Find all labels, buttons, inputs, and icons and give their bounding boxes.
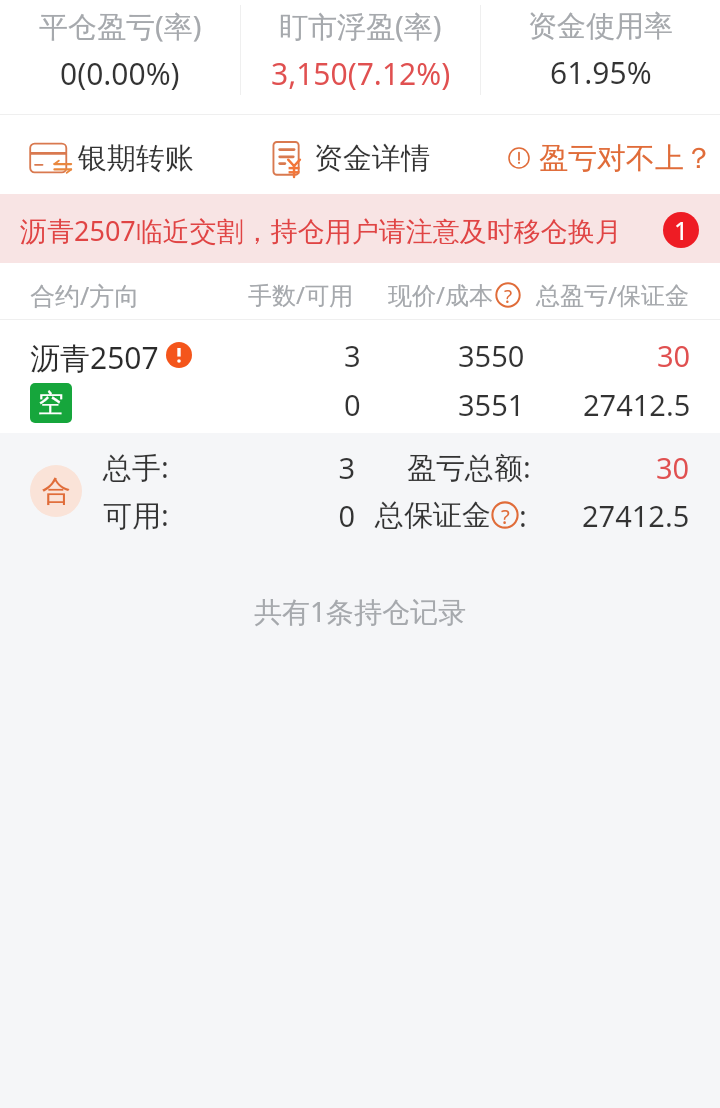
staticText: 共有1条持仓记录 [0,592,720,630]
staticText: 1 [674,213,689,247]
staticText: 27412.5 [582,496,690,535]
staticText: 资金详情 [314,140,430,177]
staticText: 现价/成本 [388,278,493,311]
button[interactable]: 资金详情 [268,122,508,194]
staticText: 3551 [458,385,525,424]
button[interactable]: 盯市浮盈(率) [241,0,480,100]
staticText: 合约/方向 [30,278,140,312]
button[interactable]: 沥青2507 [0,320,720,433]
staticText: 空 [38,387,64,420]
staticText: 0 [303,496,355,535]
staticText: 3,150(7.12%) [271,53,451,94]
staticText: 平仓盈亏(率) [39,6,202,46]
staticText: 手数/可用 [248,278,353,311]
staticText: ? [501,502,510,529]
button[interactable]: 银期转账 [28,122,268,194]
staticText: 沥青2507 [30,337,159,378]
button[interactable]: 平仓盈亏(率) [0,0,240,100]
staticText: 30 [657,336,691,375]
staticText: 3550 [458,336,525,375]
staticText: 盈亏对不上？ [539,140,713,177]
button[interactable]: 沥青2507临近交割，持仓用户请注意及时移仓换月 [0,194,720,263]
staticText: 总保证金 [375,497,491,534]
staticText: 沥青2507临近交割，持仓用户请注意及时移仓换月 [20,212,622,249]
staticText: 资金使用率 [528,8,673,45]
staticText: 3 [344,336,361,375]
staticText: 3 [303,448,355,487]
staticText: 盈亏总额: [407,447,531,487]
staticText: 61.95% [550,52,652,93]
staticText: 银期转账 [78,140,194,177]
staticText: 0 [344,385,361,424]
staticText: 可用: [103,495,303,535]
other: 资金详情 [268,138,310,178]
staticText: : [519,496,527,535]
button[interactable]: 说明 [508,122,720,194]
button[interactable]: 合 [0,433,720,545]
staticText: 30 [656,448,690,487]
button[interactable]: 资金使用率 [481,0,720,100]
staticText: 总手: [103,447,303,487]
staticText: 0(0.00%) [60,53,180,94]
other: 说明 [508,147,530,169]
other: 银期转账 [28,139,72,177]
staticText: 总盈亏/保证金 [536,278,689,311]
staticText: 盯市浮盈(率) [279,6,442,46]
staticText: 合 [42,473,71,510]
staticText: ? [504,283,513,308]
staticText: 27412.5 [583,385,691,424]
